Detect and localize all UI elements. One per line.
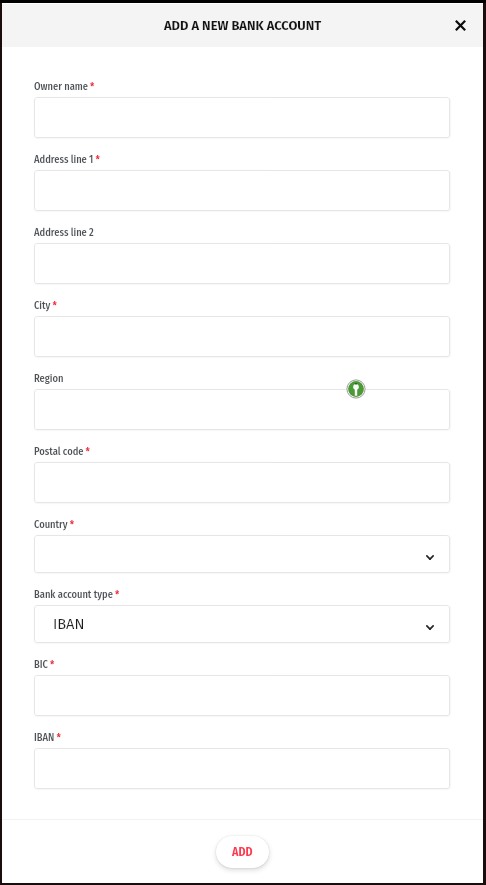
button[interactable]: ADD <box>216 836 269 868</box>
button[interactable]: Autofill with password manager <box>346 379 366 399</box>
button[interactable] <box>34 243 450 284</box>
staticText: IBAN * <box>34 731 61 743</box>
staticText: IBAN <box>53 615 85 633</box>
staticText: Region <box>34 372 64 384</box>
staticText: City * <box>34 299 57 311</box>
staticText: Postal code * <box>34 445 90 457</box>
button[interactable] <box>34 462 450 503</box>
staticText: Bank account type * <box>34 588 120 600</box>
button[interactable]: Close <box>445 10 475 40</box>
button[interactable]: IBAN <box>34 605 450 643</box>
button[interactable] <box>34 316 450 357</box>
button[interactable] <box>34 748 450 789</box>
staticText: Owner name * <box>34 80 95 92</box>
button[interactable] <box>34 535 450 573</box>
staticText: Address line 1 * <box>34 153 100 165</box>
staticText: Country * <box>34 518 75 530</box>
button[interactable] <box>34 170 450 211</box>
button[interactable] <box>34 389 450 430</box>
staticText: Address line 2 <box>34 226 94 238</box>
button[interactable] <box>34 675 450 716</box>
button[interactable] <box>34 97 450 138</box>
staticText: BIC * <box>34 658 55 670</box>
staticText: ADD A NEW BANK ACCOUNT <box>164 18 322 33</box>
staticText: ADD <box>232 845 253 859</box>
